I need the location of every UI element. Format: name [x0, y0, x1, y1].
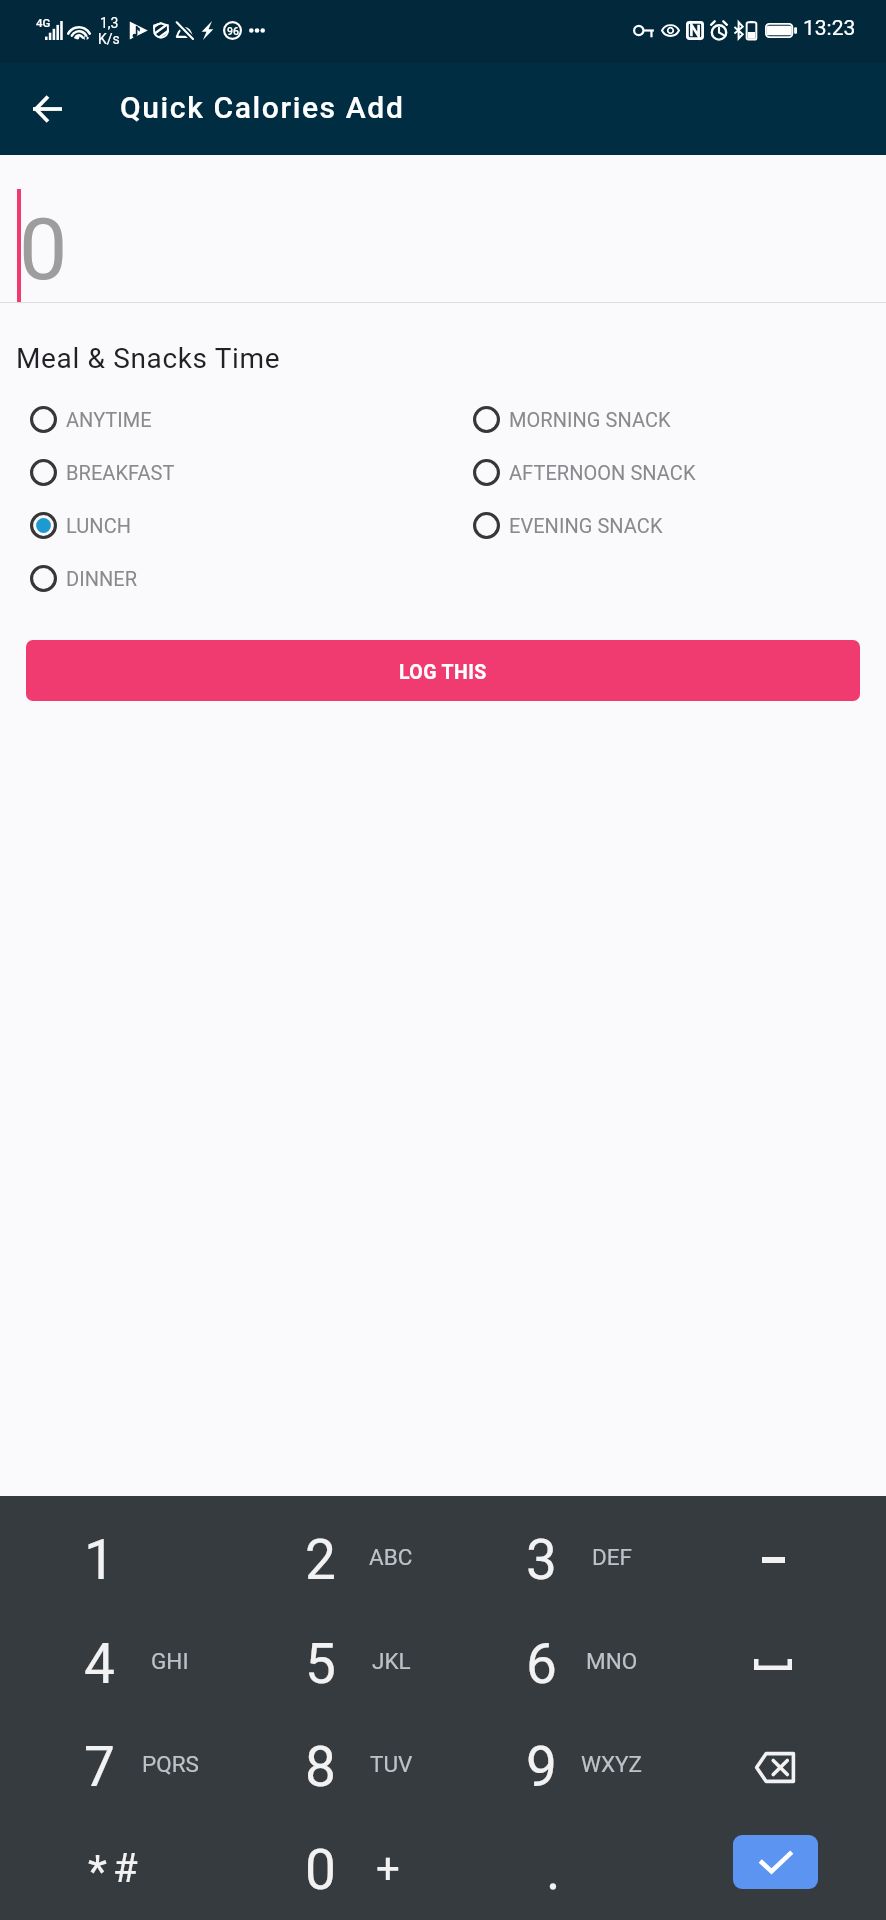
staticText: LOG THIS [399, 661, 487, 684]
staticText: 0 [19, 199, 68, 300]
button[interactable]: LUNCH [0, 499, 443, 552]
staticText: 8 [305, 1735, 336, 1799]
button[interactable]: 4 [0, 1611, 221, 1714]
staticText: LUNCH [66, 514, 132, 537]
staticText: 1,3 [100, 15, 119, 31]
staticText: 13:23 [803, 16, 856, 41]
staticText: 2 [305, 1528, 336, 1592]
button[interactable]: LOG THIS [26, 640, 860, 701]
button[interactable]: ANYTIME [0, 393, 443, 446]
button[interactable]: 3 [442, 1507, 664, 1611]
staticText: K/s [98, 31, 120, 47]
staticText: MNO [586, 1648, 638, 1674]
button[interactable]: AFTERNOON SNACK [443, 446, 886, 499]
button[interactable]: Space [664, 1611, 886, 1714]
staticText: EVENING SNACK [509, 514, 663, 537]
staticText: 6 [526, 1632, 557, 1696]
staticText: + [376, 1844, 400, 1893]
staticText: BREAKFAST [66, 461, 175, 484]
button[interactable]: 8 [221, 1714, 442, 1817]
staticText: PQRS [142, 1751, 199, 1777]
staticText: ANYTIME [66, 408, 152, 431]
button[interactable]: 6 [442, 1611, 664, 1714]
staticText: 4G [36, 16, 51, 29]
button[interactable]: Backspace [664, 1714, 886, 1817]
staticText: 96 [227, 25, 239, 37]
button[interactable]: Back [13, 63, 81, 155]
button[interactable]: BREAKFAST [0, 446, 443, 499]
staticText: DEF [592, 1544, 632, 1570]
staticText: Quick Calories Add [120, 90, 405, 125]
button[interactable]: . [442, 1817, 664, 1920]
button[interactable]: DINNER [0, 552, 443, 605]
button[interactable]: 7 [0, 1714, 221, 1817]
staticText: Meal & Snacks Time [16, 342, 281, 375]
button[interactable]: 1 [0, 1507, 221, 1611]
staticText: AFTERNOON SNACK [509, 461, 696, 484]
button[interactable]: Enter [664, 1817, 886, 1920]
staticText: 3 [526, 1528, 557, 1592]
staticText: DINNER [66, 567, 138, 590]
button[interactable]: EVENING SNACK [443, 499, 886, 552]
button[interactable]: Calories input [0, 155, 886, 303]
button[interactable]: 0 [221, 1817, 442, 1920]
staticText: 0 [305, 1838, 336, 1902]
staticText: # [113, 1845, 138, 1892]
button[interactable]: 5 [221, 1611, 442, 1714]
staticText: WXYZ [581, 1751, 643, 1777]
staticText: ABC [369, 1544, 413, 1570]
staticText: GHI [151, 1648, 189, 1674]
staticText: JKL [372, 1648, 411, 1674]
staticText: 9 [526, 1735, 557, 1799]
button[interactable]: Minus [664, 1507, 886, 1611]
staticText: 1 [84, 1528, 115, 1592]
button[interactable]: 9 [442, 1714, 664, 1817]
button[interactable]: * [0, 1817, 221, 1920]
staticText: 4 [84, 1632, 115, 1696]
button[interactable]: MORNING SNACK [443, 393, 886, 446]
staticText: * [88, 1846, 107, 1898]
button[interactable]: 2 [221, 1507, 442, 1611]
staticText: 7 [84, 1735, 115, 1799]
staticText: TUV [370, 1751, 413, 1777]
staticText: MORNING SNACK [509, 408, 671, 431]
staticText: 5 [305, 1632, 336, 1696]
staticText: . [546, 1838, 561, 1902]
